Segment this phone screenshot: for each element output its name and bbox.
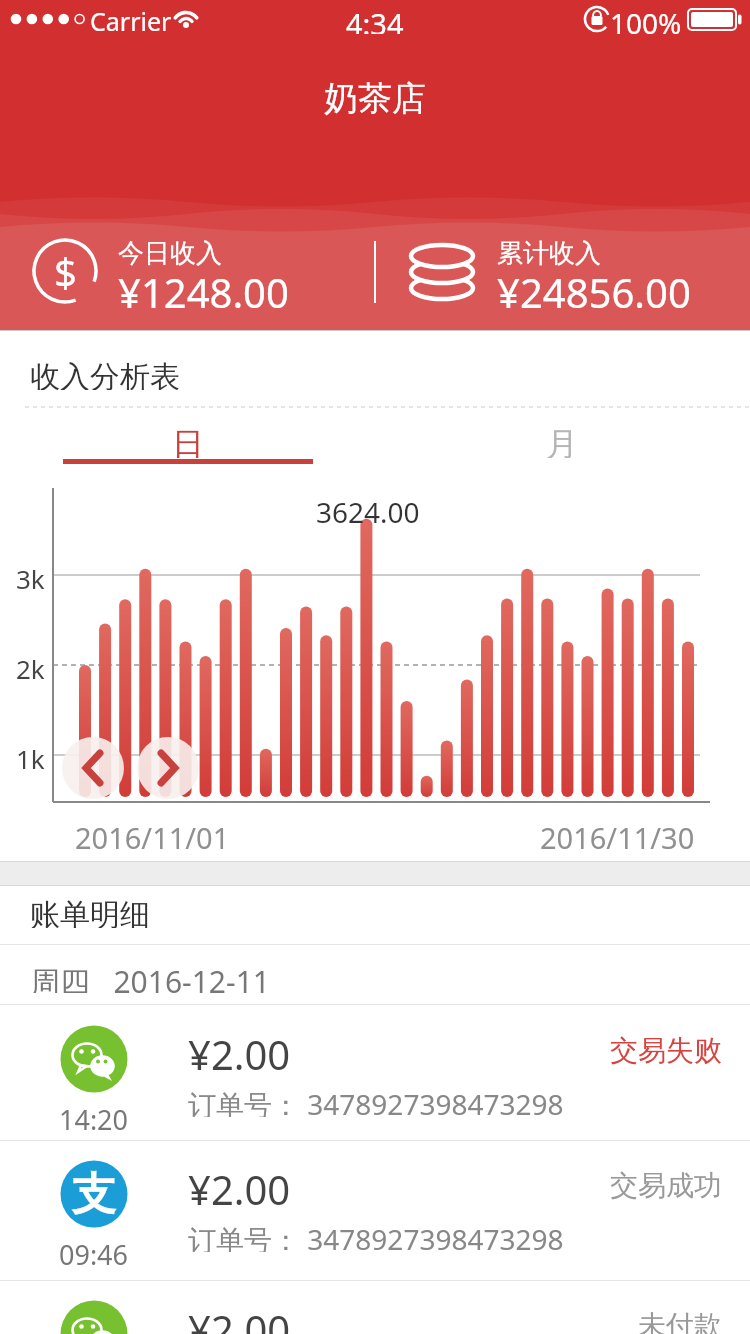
button[interactable]: 日: [63, 424, 313, 458]
staticText: 支: [72, 1167, 116, 1222]
staticText: 账单明细: [30, 896, 150, 928]
staticText: 14:20: [59, 1101, 129, 1131]
staticText: 交易失败: [610, 1033, 722, 1065]
button[interactable]: 支: [0, 1140, 750, 1280]
staticText: ¥2.00: [188, 1162, 291, 1206]
staticText: 100%: [610, 4, 682, 34]
button[interactable]: ¥2.00: [0, 1280, 750, 1334]
staticText: 1k: [16, 741, 45, 769]
staticText: 3k: [16, 561, 45, 589]
staticText: 日: [172, 424, 204, 458]
staticText: 累计收入: [497, 237, 601, 267]
staticText: 2016/11/30: [540, 818, 695, 850]
staticText: 未付款: [638, 1308, 722, 1334]
staticText: 收入分析表: [30, 358, 180, 390]
button[interactable]: 14:20: [0, 1005, 750, 1145]
staticText: $: [54, 244, 77, 298]
staticText: ¥1248.00: [118, 265, 289, 313]
staticText: 2k: [16, 651, 45, 679]
staticText: 月: [546, 424, 578, 458]
button[interactable]: 月: [437, 424, 687, 458]
staticText: 2016/11/01: [75, 818, 230, 850]
staticText: 订单号： 3478927398473298: [188, 1085, 564, 1117]
staticText: 订单号： 3478927398473298: [188, 1220, 564, 1252]
staticText: 交易成功: [610, 1168, 722, 1200]
staticText: 3624.00: [316, 493, 420, 523]
staticText: 4:34: [346, 4, 404, 34]
staticText: 奶茶店: [324, 77, 426, 120]
staticText: ¥24856.00: [497, 265, 691, 313]
staticText: Carrier: [90, 4, 172, 34]
staticText: ¥2.00: [188, 1027, 291, 1071]
staticText: 09:46: [59, 1236, 129, 1266]
staticText: 周四 2016-12-11: [30, 961, 270, 993]
staticText: 今日收入: [118, 237, 222, 267]
staticText: ¥2.00: [188, 1302, 291, 1334]
